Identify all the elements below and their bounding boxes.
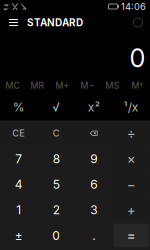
staticText: 5 (53, 177, 60, 192)
button[interactable]: M˅ (125, 74, 150, 96)
staticText: 3 (90, 203, 97, 217)
button[interactable]: MC (0, 74, 25, 96)
button[interactable]: MR (25, 74, 50, 96)
button[interactable]: C (37, 120, 75, 146)
staticText: . (92, 228, 95, 243)
button[interactable]: − (112, 172, 150, 197)
button[interactable]: 1 (0, 197, 37, 223)
staticText: M− (80, 80, 94, 91)
button[interactable]: 7 (0, 146, 37, 172)
button[interactable]: x² (75, 94, 112, 120)
staticText: M+ (55, 80, 69, 91)
button[interactable]: History (128, 13, 148, 32)
staticText: ÷ (127, 125, 136, 141)
button[interactable]: = (112, 223, 150, 248)
button[interactable]: 2 (37, 197, 75, 223)
staticText: 7 (15, 151, 22, 166)
staticText: CE (12, 128, 25, 139)
staticText: 14:06 (121, 1, 146, 12)
button[interactable]: M− (75, 74, 100, 96)
button[interactable]: 6 (75, 172, 112, 197)
staticText: ± (15, 228, 23, 243)
button[interactable]: 9 (75, 146, 112, 172)
button[interactable]: + (112, 197, 150, 223)
button[interactable]: √ (37, 94, 75, 120)
staticText: √ (52, 100, 60, 114)
staticText: 1 (16, 203, 21, 217)
staticText: + (127, 202, 136, 218)
button[interactable]: ÷ (112, 120, 150, 146)
button[interactable]: × (112, 146, 150, 172)
button[interactable]: Backspace (75, 120, 112, 146)
button[interactable]: 8 (37, 146, 75, 172)
staticText: − (127, 176, 136, 192)
staticText: ¹/x (124, 100, 139, 114)
staticText: 6 (90, 177, 97, 192)
staticText: MR (30, 80, 44, 91)
button[interactable]: % (0, 94, 37, 120)
staticText: MC (5, 80, 19, 91)
staticText: C (53, 128, 60, 139)
staticText: × (127, 151, 136, 167)
staticText: 4 (15, 177, 23, 192)
staticText: x² (88, 100, 100, 114)
button[interactable]: ± (0, 223, 37, 248)
button[interactable]: 4 (0, 172, 37, 197)
staticText: = (127, 227, 136, 244)
button[interactable]: . (75, 223, 112, 248)
staticText: 0 (129, 43, 145, 73)
staticText: 0 (52, 228, 60, 243)
button[interactable]: Menu (4, 13, 23, 32)
button[interactable]: M+ (50, 74, 75, 96)
staticText: STANDARD (27, 16, 83, 29)
button[interactable]: 0 (37, 223, 75, 248)
button[interactable]: 5 (37, 172, 75, 197)
button[interactable]: MS (100, 74, 125, 96)
staticText: 2 (53, 203, 60, 217)
staticText: 8 (53, 151, 60, 166)
button[interactable]: ¹/x (112, 94, 150, 120)
staticText: MS (105, 80, 119, 91)
staticText: 9 (90, 151, 97, 166)
staticText: % (13, 100, 25, 114)
button[interactable]: CE (0, 120, 37, 146)
button[interactable]: 3 (75, 197, 112, 223)
staticText: M˅ (131, 80, 143, 91)
